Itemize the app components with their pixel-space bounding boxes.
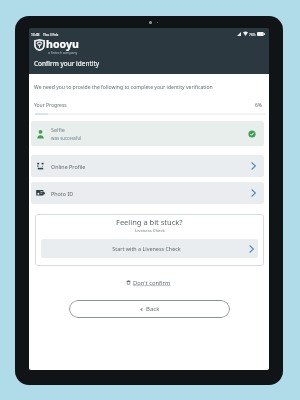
- staticText: Photo ID: [51, 190, 74, 197]
- staticText: Thu 3 Feb: [43, 32, 59, 36]
- button[interactable]: Photo ID: [31, 182, 264, 204]
- staticText: 6%: [255, 102, 263, 109]
- staticText: Confirm your identity: [34, 59, 100, 68]
- staticText: Start with a Liveness Check: [112, 245, 181, 252]
- staticText: Feeling a bit stuck?: [116, 217, 183, 227]
- button[interactable]: Selfie: [31, 121, 264, 146]
- button[interactable]: Online Profile: [31, 155, 264, 177]
- staticText: 10:48: [31, 32, 40, 36]
- staticText: 76%: [249, 32, 256, 36]
- staticText: Liveness Check: [135, 228, 165, 234]
- staticText: hooyu: [46, 37, 79, 51]
- button[interactable]: Start with a Liveness Check: [41, 239, 258, 258]
- staticText: We need you to provide the following to …: [34, 84, 213, 91]
- staticText: was successful: [51, 135, 82, 141]
- staticText: Online Profile: [51, 163, 86, 170]
- button[interactable]: Don't confirm: [126, 278, 171, 287]
- staticText: Selfie: [51, 126, 65, 133]
- staticText: Back: [146, 305, 160, 313]
- staticText: a fintech company: [48, 50, 78, 55]
- staticText: Don't confirm: [133, 279, 171, 287]
- staticText: Your Progress: [34, 102, 67, 109]
- button[interactable]: Back: [69, 300, 230, 318]
